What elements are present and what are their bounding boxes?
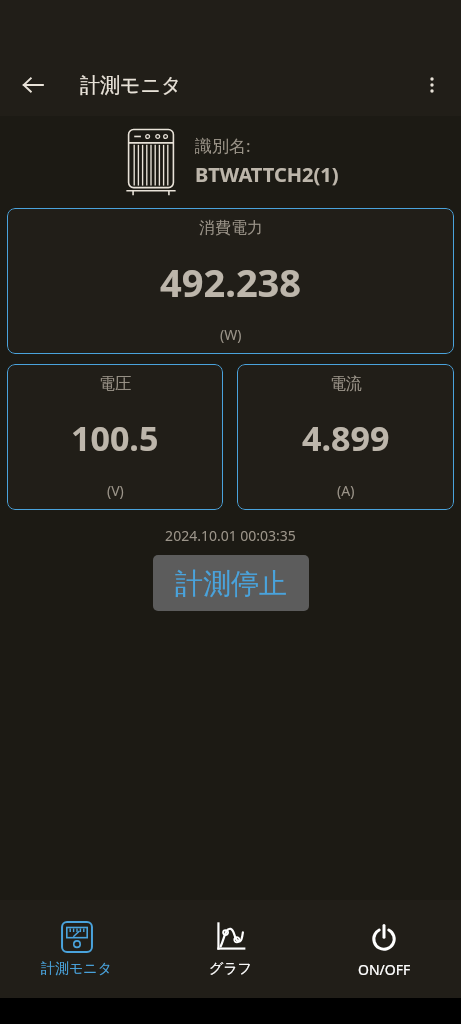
button[interactable]: Back <box>12 64 54 106</box>
button[interactable]: 計測停止 <box>153 555 309 611</box>
button[interactable]: 電圧 <box>7 364 223 510</box>
staticText: 消費電力 <box>199 218 263 238</box>
staticText: グラフ <box>209 960 252 978</box>
staticText: ON/OFF <box>358 960 411 979</box>
button[interactable]: More options <box>411 64 453 106</box>
staticText: 492.238 <box>160 256 302 308</box>
staticText: 計測停止 <box>175 566 287 601</box>
button[interactable]: 電流 <box>237 364 454 510</box>
staticText: (A) <box>337 481 355 500</box>
button[interactable]: 計測モニタ <box>0 900 153 998</box>
staticText: 100.5 <box>71 415 159 461</box>
staticText: 計測モニタ <box>41 960 112 978</box>
staticText: 2024.10.01 00:03:35 <box>0 526 461 545</box>
staticText: 計測モニタ <box>80 73 182 98</box>
button[interactable]: グラフ <box>153 900 307 998</box>
staticText: (W) <box>220 325 242 344</box>
staticText: 電流 <box>330 374 362 394</box>
staticText: BTWATTCH2(1) <box>195 161 339 188</box>
staticText: (V) <box>107 481 124 500</box>
staticText: 識別名: <box>195 134 251 157</box>
button[interactable]: ON/OFF <box>307 900 461 998</box>
staticText: 電圧 <box>99 374 131 394</box>
staticText: 4.899 <box>302 415 390 461</box>
button[interactable]: 消費電力 <box>7 208 454 354</box>
